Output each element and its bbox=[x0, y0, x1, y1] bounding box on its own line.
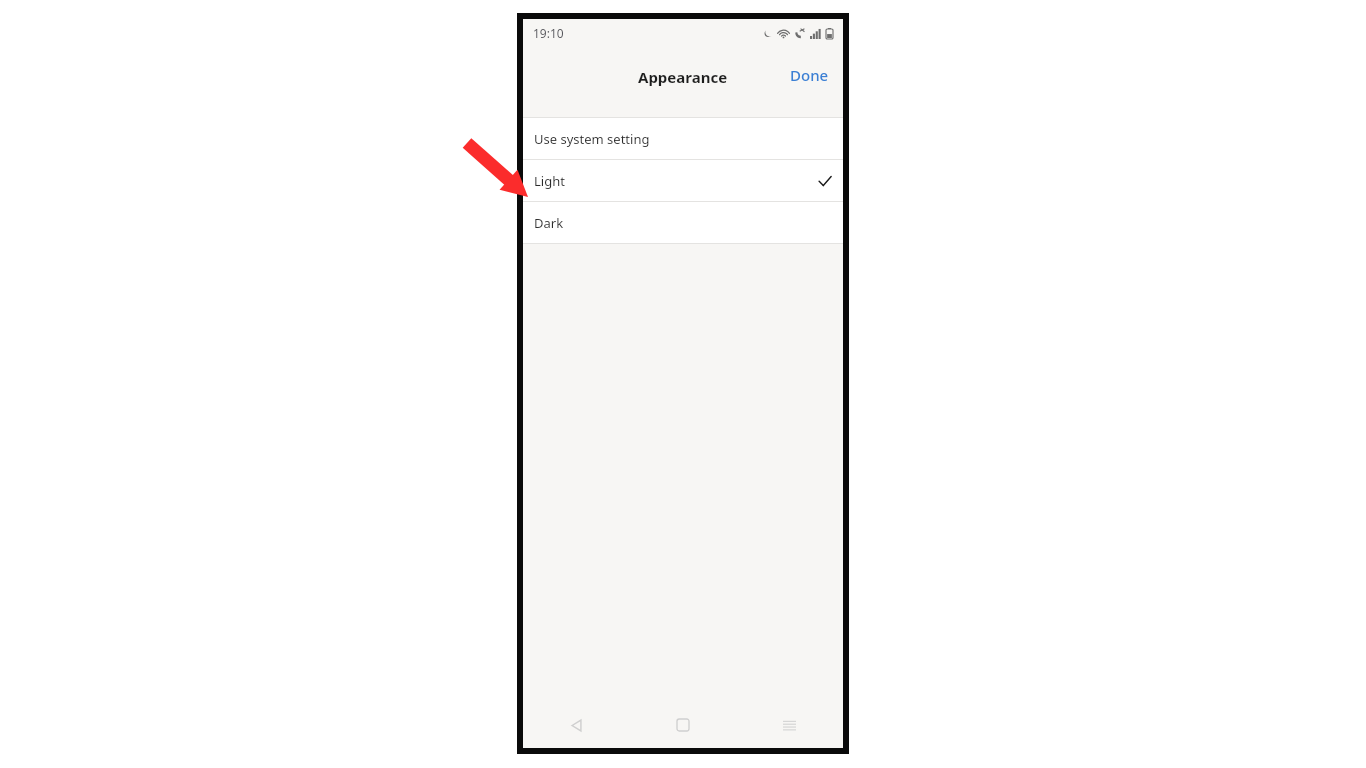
staticText: Appearance bbox=[638, 67, 728, 87]
button[interactable]: Back bbox=[523, 702, 629, 748]
button[interactable]: Done bbox=[780, 57, 839, 93]
button[interactable]: Use system setting bbox=[523, 118, 843, 159]
button[interactable]: Recents bbox=[736, 702, 843, 748]
staticText: Done bbox=[790, 65, 829, 85]
button[interactable]: Home bbox=[629, 702, 736, 748]
staticText: 19:10 bbox=[533, 25, 564, 41]
staticText: Use system setting bbox=[534, 130, 650, 148]
button[interactable]: Dark bbox=[523, 202, 843, 243]
button[interactable]: Light bbox=[523, 160, 843, 201]
staticText: Dark bbox=[534, 214, 564, 232]
staticText: Light bbox=[534, 172, 565, 190]
